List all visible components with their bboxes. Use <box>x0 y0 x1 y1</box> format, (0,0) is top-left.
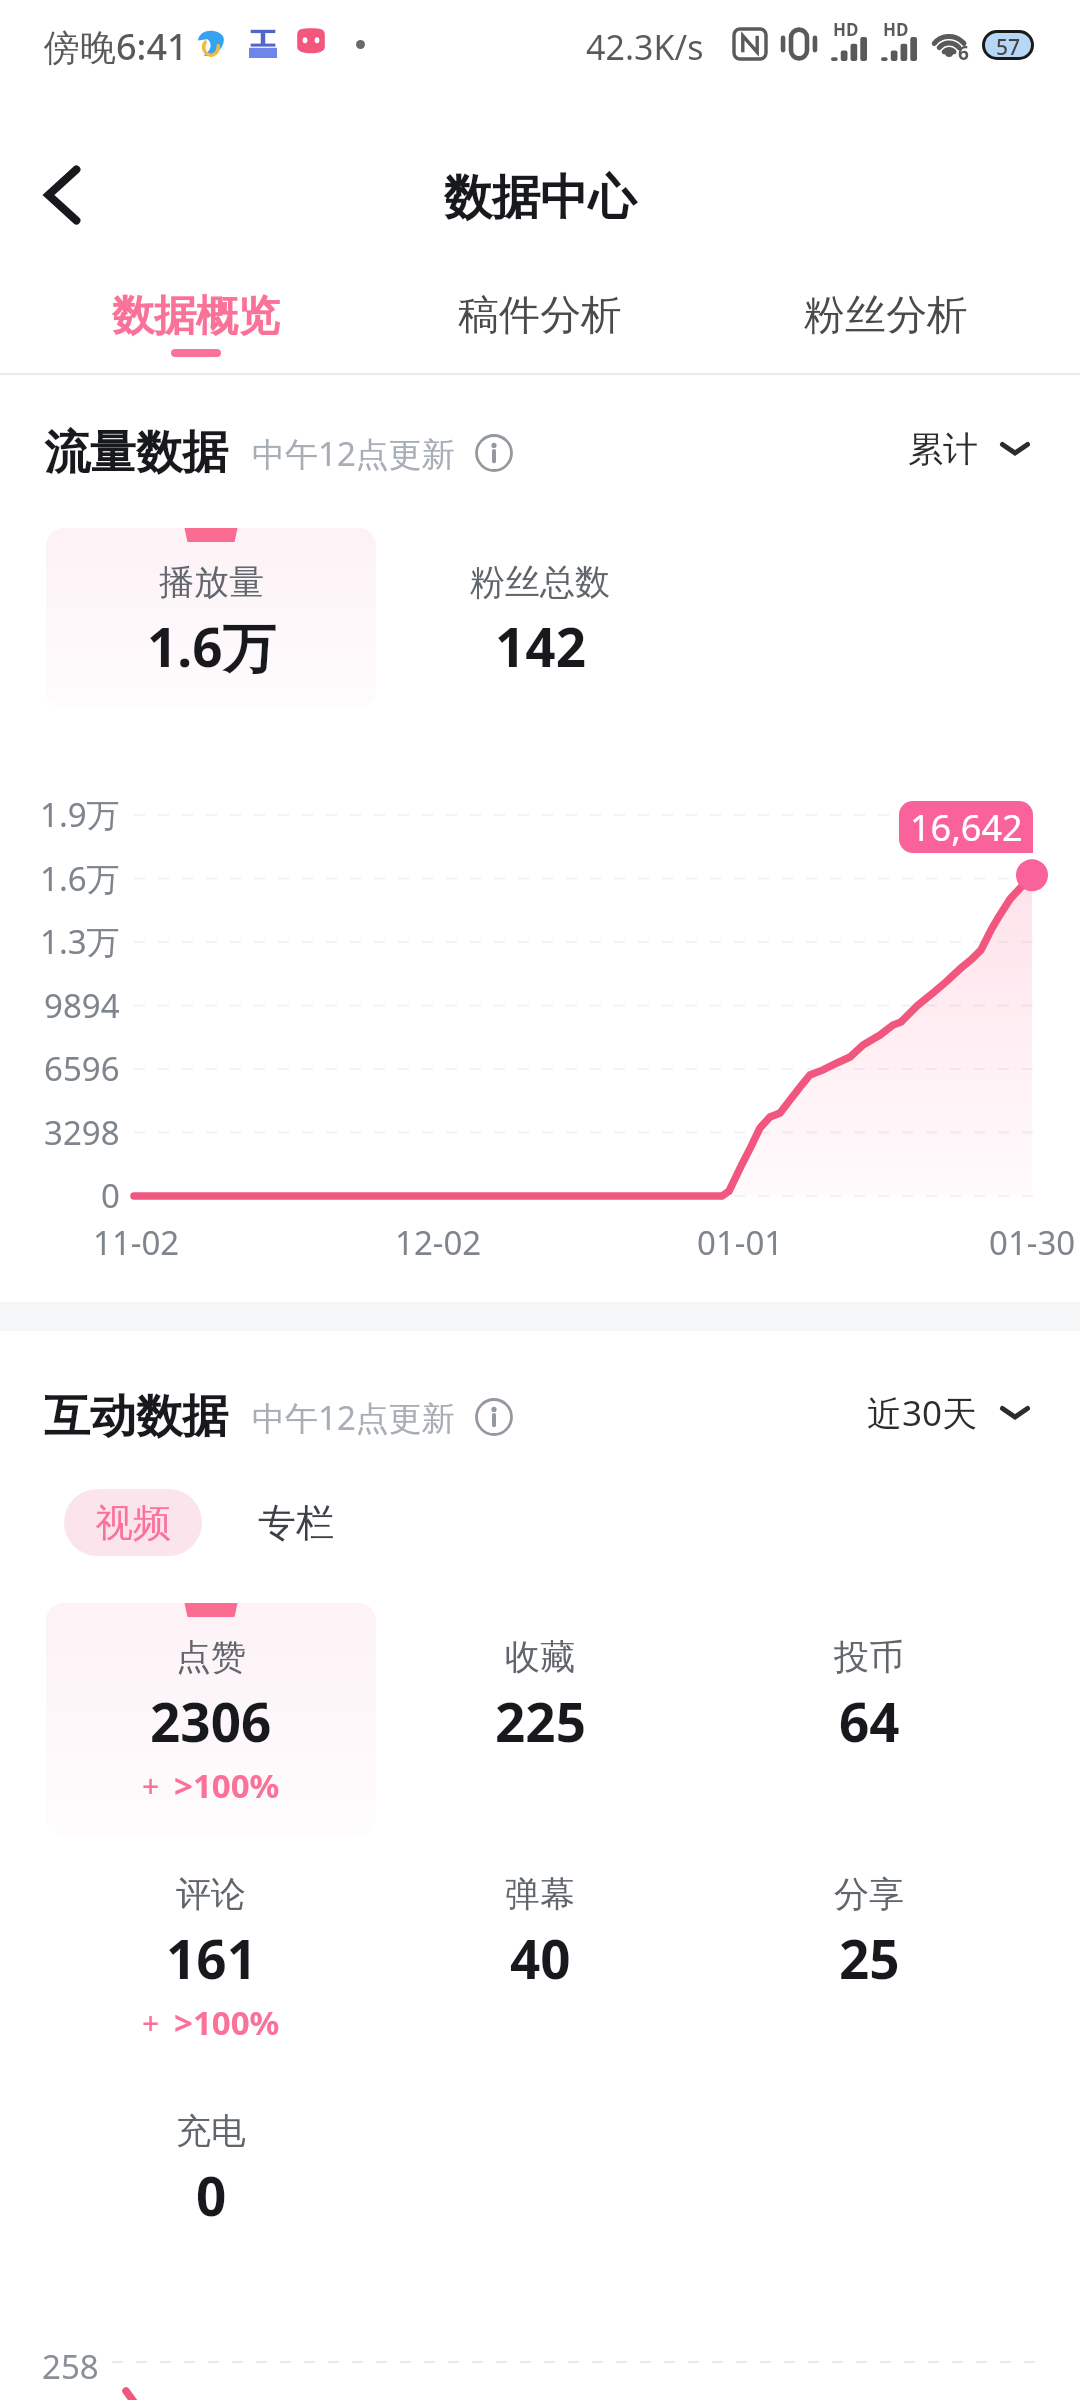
staticText: 中午12点更新 <box>252 1395 455 1440</box>
staticText: 数据中心 <box>444 168 636 228</box>
staticText: >100% <box>174 1763 280 1808</box>
button[interactable]: 投币 <box>704 1603 1034 1784</box>
staticText: 01-30 <box>989 1220 1076 1265</box>
staticText: 互动数据 <box>44 1388 228 1446</box>
staticText: 弹幕 <box>505 1872 575 1916</box>
staticText: 视频 <box>95 1499 171 1547</box>
staticText: 数据概览 <box>112 290 280 343</box>
button[interactable]: 粉丝总数 <box>375 528 705 709</box>
staticText: 1.6万 <box>40 856 120 901</box>
button[interactable]: 粉丝分析 <box>736 282 1036 377</box>
button[interactable]: 点赞 <box>46 1603 376 1835</box>
staticText: 评论 <box>176 1872 246 1916</box>
staticText: 40 <box>510 1922 571 1994</box>
staticText: 16,642 <box>910 803 1023 852</box>
button[interactable]: 近30天 <box>867 1389 1030 1437</box>
staticText: 播放量 <box>159 560 264 604</box>
staticText: 42.3K/s <box>586 24 704 70</box>
staticText: 收藏 <box>505 1635 575 1679</box>
staticText: 点赞 <box>176 1635 246 1679</box>
button[interactable]: 充电 <box>46 2077 376 2258</box>
button[interactable]: 数据概览 <box>46 282 346 377</box>
staticText: 57 <box>996 33 1021 57</box>
staticText: 投币 <box>834 1635 904 1679</box>
staticText: 0 <box>196 2159 227 2231</box>
staticText: 流量数据 <box>44 424 228 482</box>
staticText: 中午12点更新 <box>252 431 455 476</box>
button[interactable]: 分享 <box>704 1840 1034 2021</box>
staticText: 01-01 <box>697 1220 784 1265</box>
staticText: 傍晚6:41 <box>44 22 188 71</box>
staticText: 6596 <box>44 1046 120 1091</box>
staticText: >100% <box>174 2000 280 2045</box>
button[interactable]: 专栏 <box>226 1489 366 1556</box>
staticText: 6 <box>958 40 969 66</box>
staticText: 161 <box>166 1922 257 1994</box>
staticText: + <box>142 2002 160 2043</box>
staticText: HD <box>833 18 859 41</box>
staticText: 1.3万 <box>40 919 120 964</box>
staticText: + <box>142 1765 160 1806</box>
staticText: 充电 <box>176 2109 246 2153</box>
button[interactable]: 播放量 <box>46 528 376 709</box>
button[interactable]: 评论 <box>46 1840 376 2072</box>
button[interactable]: 稿件分析 <box>390 282 690 377</box>
staticText: 1.9万 <box>40 792 120 837</box>
staticText: 25 <box>839 1922 900 1994</box>
button[interactable]: 累计 <box>908 425 1030 473</box>
staticText: 258 <box>42 2344 99 2389</box>
staticText: 粉丝总数 <box>470 560 610 604</box>
staticText: 225 <box>495 1685 586 1757</box>
staticText: HD <box>883 18 909 41</box>
staticText: 11-02 <box>93 1220 180 1265</box>
button[interactable]: 弹幕 <box>375 1840 705 2021</box>
staticText: 0 <box>101 1173 120 1218</box>
staticText: 累计 <box>908 427 978 471</box>
button[interactable]: 视频 <box>64 1489 202 1556</box>
staticText: 64 <box>839 1685 900 1757</box>
button[interactable]: Back <box>22 155 102 235</box>
staticText: 3298 <box>44 1110 120 1155</box>
staticText: 近30天 <box>867 1389 978 1437</box>
staticText: 9894 <box>44 983 120 1028</box>
staticText: 专栏 <box>258 1499 334 1547</box>
staticText: 1.6万 <box>147 610 276 682</box>
staticText: 2306 <box>150 1685 272 1757</box>
staticText: 12-02 <box>395 1220 482 1265</box>
staticText: 稿件分析 <box>458 290 622 342</box>
button[interactable]: 收藏 <box>375 1603 705 1784</box>
staticText: 粉丝分析 <box>804 290 968 342</box>
staticText: 142 <box>495 610 586 682</box>
staticText: 分享 <box>834 1872 904 1916</box>
